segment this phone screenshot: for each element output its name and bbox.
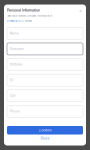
staticText: Close [40,137,49,140]
staticText: City [10,94,16,97]
button[interactable]: Name [7,27,83,39]
staticText: Personal Information [7,8,40,12]
button[interactable]: ID [7,74,83,86]
staticText: Surname [10,47,24,51]
button[interactable]: Surname [7,43,83,55]
staticText: account. [24,19,33,22]
button[interactable]: Close [78,8,83,13]
staticText: Name [10,31,19,35]
staticText: × [79,8,82,13]
staticText: Phone [10,109,20,113]
button[interactable]: Birthday [7,58,83,70]
button[interactable]: Close [7,135,83,141]
staticText: ID [10,78,13,82]
button[interactable]: City [7,90,83,102]
staticText: Take you a moment personal information o… [7,14,52,17]
staticText: Birthday [10,63,23,66]
button[interactable]: Phone [7,105,83,117]
staticText: binexbo2022 [7,19,24,22]
staticText: Confirm [38,128,51,132]
button[interactable]: Confirm [7,126,83,134]
